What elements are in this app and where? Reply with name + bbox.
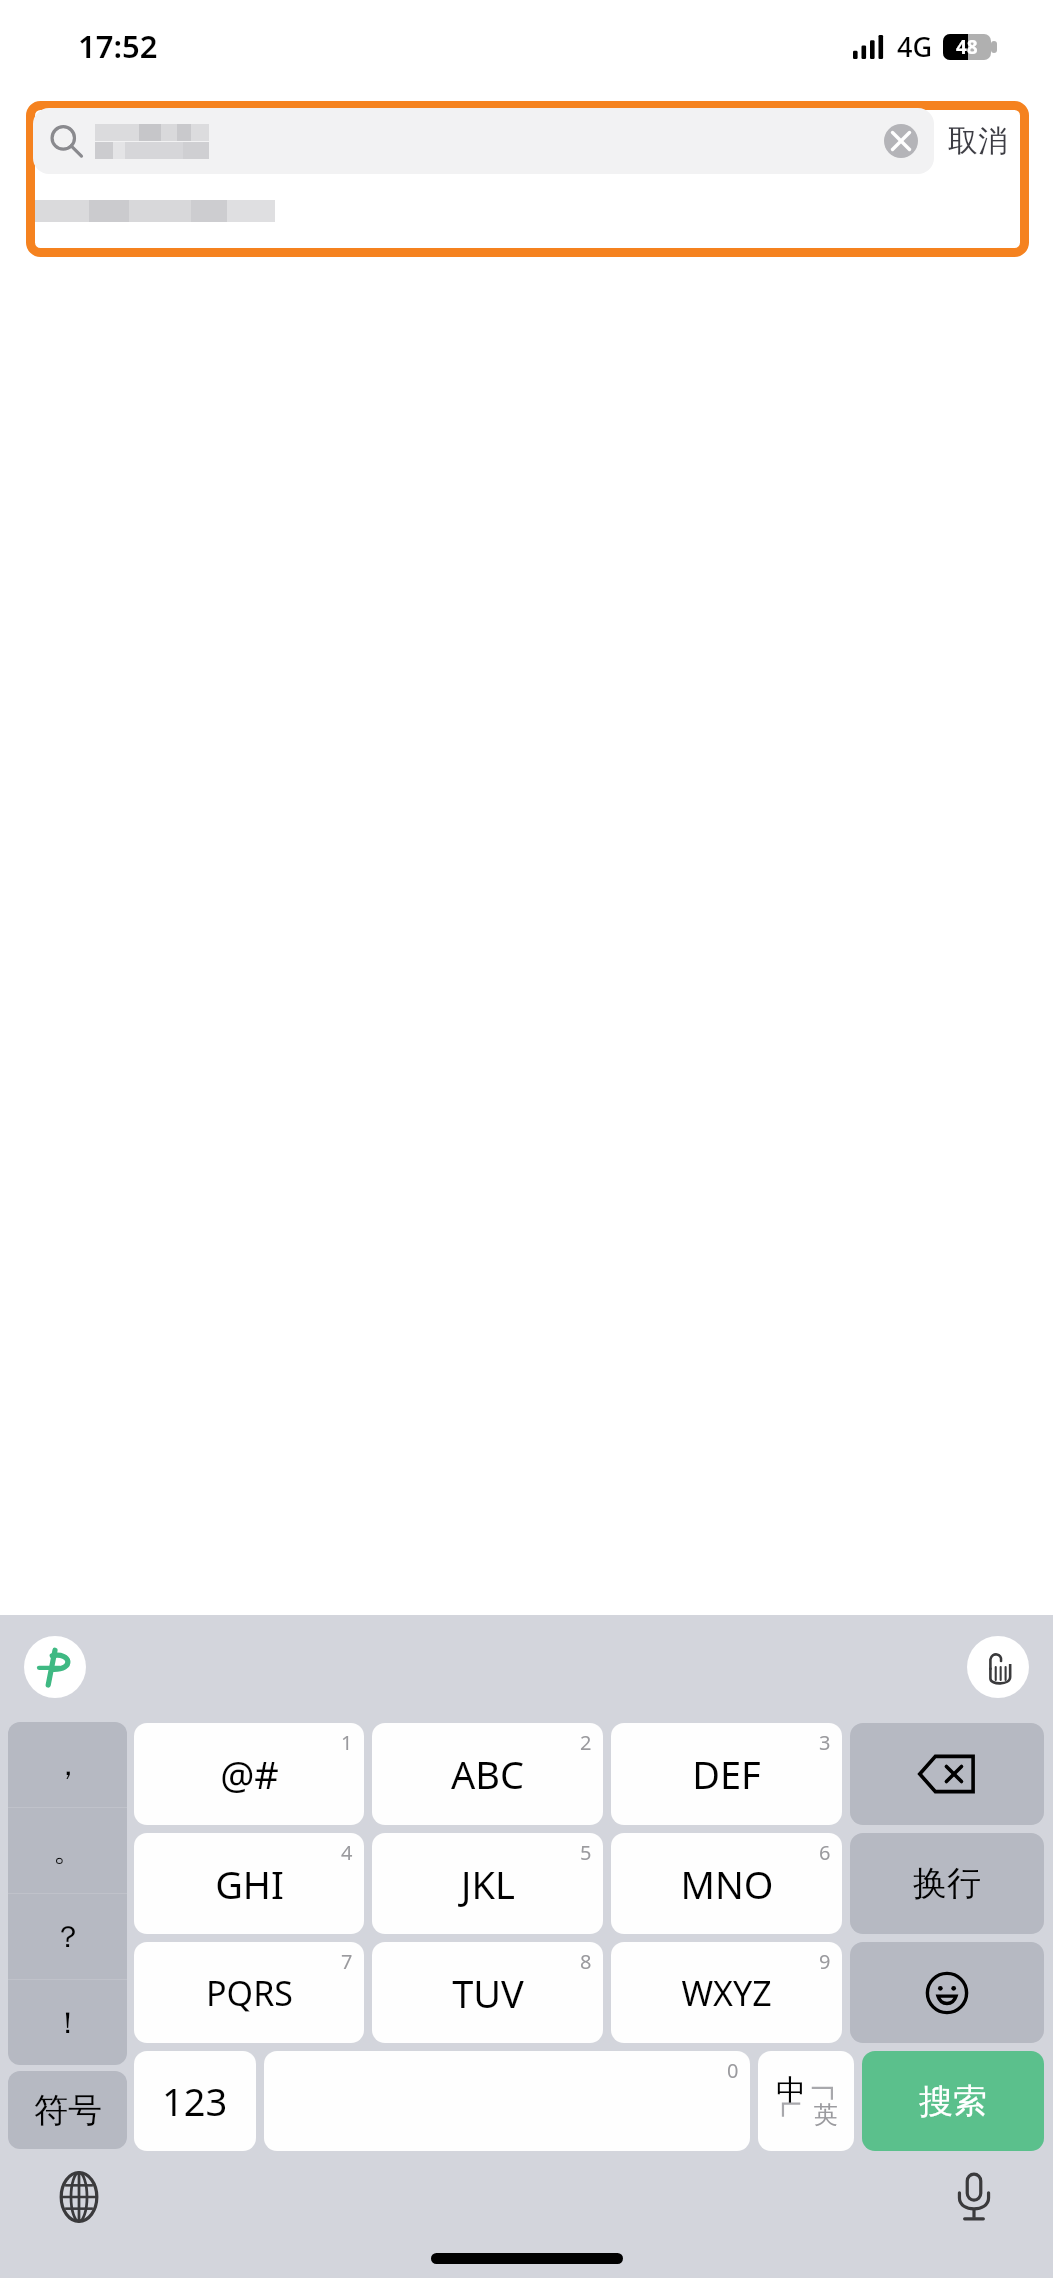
staticText: 9 bbox=[819, 1948, 831, 1975]
button[interactable]: 换行 bbox=[850, 1833, 1044, 1934]
staticText: 123 bbox=[162, 2075, 228, 2127]
staticText: MNO bbox=[680, 1858, 774, 1910]
button[interactable]: 7 bbox=[134, 1942, 364, 2043]
staticText: 8 bbox=[580, 1948, 592, 1975]
button[interactable]: 5 bbox=[372, 1833, 603, 1934]
button[interactable]: 1 bbox=[134, 1723, 364, 1825]
staticText: TUV bbox=[452, 1967, 524, 2019]
button[interactable]: 4 bbox=[134, 1833, 364, 1934]
button[interactable]: Chinese English toggle bbox=[758, 2051, 854, 2151]
button[interactable]: 取消 bbox=[934, 122, 1022, 160]
staticText: ！ bbox=[53, 2004, 83, 2042]
button[interactable]: ？ bbox=[8, 1894, 127, 1979]
staticText: ， bbox=[53, 1746, 83, 1784]
button[interactable]: Delete bbox=[850, 1723, 1044, 1825]
staticText: 搜索 bbox=[919, 2080, 987, 2123]
staticText: 换行 bbox=[913, 1862, 981, 1905]
staticText: ？ bbox=[53, 1918, 83, 1956]
staticText: JKL bbox=[461, 1858, 515, 1910]
staticText: 0 bbox=[727, 2057, 739, 2084]
staticText: 。 bbox=[53, 1832, 83, 1870]
staticText: 符号 bbox=[34, 2089, 102, 2132]
button[interactable]: 。 bbox=[8, 1808, 127, 1893]
button[interactable]: 2 bbox=[372, 1723, 603, 1825]
staticText: 4 bbox=[341, 1839, 353, 1866]
staticText: 中 bbox=[776, 2072, 806, 2110]
staticText: ABC bbox=[451, 1748, 524, 1800]
staticText: 1 bbox=[341, 1729, 353, 1756]
button[interactable]: 8 bbox=[372, 1942, 603, 2043]
button[interactable]: Switch language bbox=[48, 2166, 110, 2228]
button[interactable]: 3 bbox=[611, 1723, 842, 1825]
staticText: PQRS bbox=[206, 1970, 293, 2016]
button[interactable]: Space bbox=[264, 2051, 750, 2151]
staticText: GHI bbox=[215, 1858, 284, 1910]
staticText: DEF bbox=[692, 1748, 761, 1800]
button[interactable]: Voice input bbox=[943, 2166, 1005, 2228]
button[interactable]: 6 bbox=[611, 1833, 842, 1934]
staticText: 5 bbox=[580, 1839, 592, 1866]
button[interactable]: ， bbox=[8, 1722, 127, 1807]
button[interactable]: Emoji bbox=[850, 1942, 1044, 2043]
staticText: 2 bbox=[580, 1729, 592, 1756]
button[interactable]: 9 bbox=[611, 1942, 842, 2043]
staticText: 取消 bbox=[948, 122, 1008, 160]
button[interactable]: 搜索 bbox=[862, 2051, 1044, 2151]
button[interactable]: Clear bbox=[884, 124, 918, 158]
button[interactable]: 123 bbox=[134, 2051, 256, 2151]
button[interactable]: 符号 bbox=[8, 2071, 127, 2149]
staticText: @# bbox=[220, 1748, 279, 1800]
button[interactable] bbox=[33, 174, 1022, 248]
staticText: 3 bbox=[819, 1729, 831, 1756]
button[interactable]: Clear bbox=[33, 108, 1022, 174]
staticText: 48 bbox=[956, 34, 978, 60]
button[interactable]: Handwriting bbox=[967, 1636, 1029, 1698]
button[interactable]: ！ bbox=[8, 1980, 127, 2065]
staticText: 英 bbox=[814, 2100, 838, 2130]
staticText: 4G bbox=[897, 28, 933, 65]
staticText: WXYZ bbox=[681, 1970, 772, 2016]
staticText: 7 bbox=[341, 1948, 353, 1975]
staticText: 6 bbox=[819, 1839, 831, 1866]
staticText: 17:52 bbox=[78, 25, 158, 67]
button[interactable]: Input method logo bbox=[24, 1636, 86, 1698]
